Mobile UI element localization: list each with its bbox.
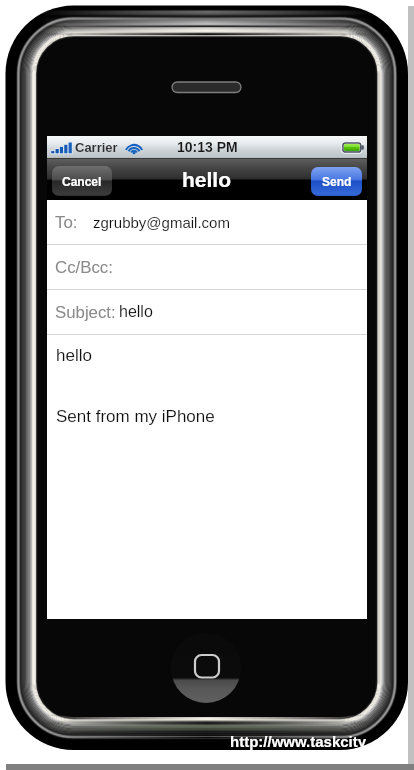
staticText: zgrubby@gmail.com — [93, 214, 230, 231]
staticText: http://www.taskcity — [230, 733, 367, 750]
other: Wi-Fi — [125, 143, 143, 154]
staticText: hello — [119, 303, 153, 321]
other: Battery — [342, 142, 364, 153]
staticText: Carrier — [75, 140, 118, 155]
staticText: hello — [56, 346, 92, 365]
button[interactable]: Cancel — [52, 166, 112, 196]
staticText: Send — [322, 175, 352, 188]
staticText: Cc/Bcc: — [55, 258, 113, 277]
staticText: hello — [182, 168, 232, 191]
staticText: To: — [55, 213, 78, 232]
staticText: 10:13 PM — [177, 139, 238, 155]
staticText: Sent from my iPhone — [56, 407, 215, 426]
button[interactable]: hello — [56, 346, 367, 619]
button[interactable]: To: — [47, 200, 367, 245]
button[interactable]: Subject: — [47, 290, 367, 335]
button[interactable]: Send — [311, 167, 362, 196]
staticText: Subject: — [55, 303, 116, 322]
staticText: Cancel — [62, 175, 102, 188]
button[interactable]: Cc/Bcc: — [47, 245, 367, 290]
